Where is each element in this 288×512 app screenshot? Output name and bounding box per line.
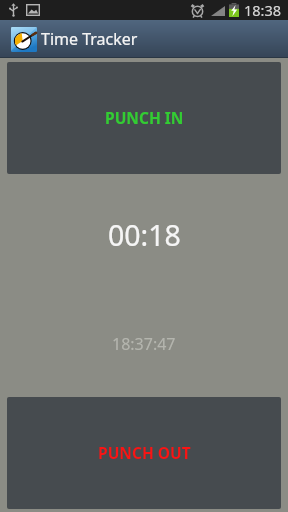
other: Screenshot captured [26, 4, 40, 16]
button[interactable]: PUNCH IN [7, 62, 281, 174]
other: Mobile signal [211, 5, 225, 16]
staticText: Time Tracker [41, 28, 138, 50]
button[interactable]: PUNCH OUT [7, 397, 281, 509]
staticText: 00:18 [108, 216, 181, 255]
other: USB connected [8, 3, 19, 17]
other: Battery charging [229, 3, 239, 17]
other: Alarm set [190, 3, 205, 17]
staticText: PUNCH IN [105, 107, 184, 128]
other: Time Tracker [11, 27, 37, 52]
staticText: 18:37:47 [112, 333, 176, 355]
staticText: PUNCH OUT [98, 442, 191, 463]
staticText: 18:38 [244, 0, 282, 20]
